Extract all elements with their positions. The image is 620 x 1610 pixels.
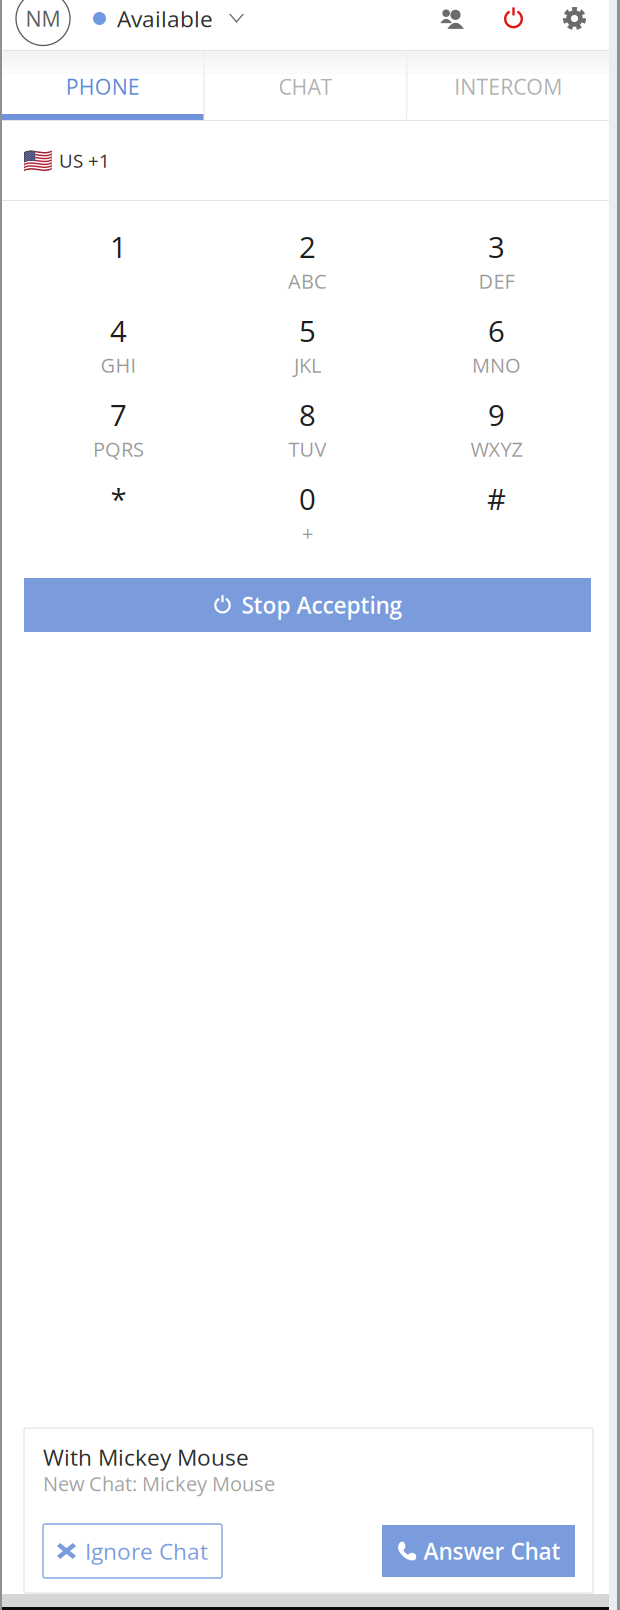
button[interactable]: 6 <box>402 315 591 399</box>
button[interactable]: Answer Chat <box>382 1525 575 1577</box>
staticText: With Mickey Mouse <box>43 1442 249 1472</box>
staticText: * <box>110 478 126 518</box>
staticText: Available <box>117 3 213 34</box>
staticText: 9 <box>488 394 505 434</box>
button[interactable]: 8 <box>213 399 402 483</box>
button[interactable]: 1 <box>24 231 213 315</box>
button[interactable]: CHAT <box>205 51 406 120</box>
staticText: PHONE <box>66 72 140 101</box>
button[interactable]: 🇺🇸 <box>2 121 609 200</box>
staticText: ABC <box>288 267 327 295</box>
button[interactable]: 9 <box>402 399 591 483</box>
button[interactable]: INTERCOM <box>407 51 609 120</box>
staticText: Answer Chat <box>423 1536 560 1566</box>
button[interactable]: 2 <box>213 231 402 315</box>
staticText: MNO <box>472 351 521 379</box>
staticText: 2 <box>299 226 316 266</box>
staticText: TUV <box>288 435 326 463</box>
staticText: US +1 <box>59 148 110 173</box>
staticText: INTERCOM <box>454 72 562 101</box>
button[interactable]: 4 <box>24 315 213 399</box>
staticText: 4 <box>110 310 127 350</box>
staticText: JKL <box>294 351 321 379</box>
button[interactable]: Go offline <box>483 0 544 37</box>
button[interactable]: 3 <box>402 231 591 315</box>
staticText: + <box>302 519 313 547</box>
button[interactable]: # <box>402 483 591 567</box>
staticText: # <box>487 478 506 518</box>
staticText: Stop Accepting <box>241 590 402 620</box>
staticText: 3 <box>488 226 505 266</box>
staticText: New Chat: Mickey Mouse <box>43 1470 275 1497</box>
button[interactable]: Stop Accepting <box>24 578 591 632</box>
button[interactable]: 5 <box>213 315 402 399</box>
staticText: WXYZ <box>470 435 522 463</box>
button[interactable]: 7 <box>24 399 213 483</box>
staticText: GHI <box>100 351 136 379</box>
staticText: 🇺🇸 <box>23 146 53 174</box>
staticText: NM <box>25 4 60 33</box>
button[interactable]: Settings <box>544 0 605 37</box>
button[interactable]: Ignore Chat <box>43 1524 222 1578</box>
staticText: 7 <box>110 394 127 434</box>
button[interactable]: PHONE <box>2 51 204 120</box>
staticText: Ignore Chat <box>85 1536 208 1566</box>
button[interactable]: Manage users <box>422 0 483 37</box>
staticText: DEF <box>478 267 514 295</box>
staticText: 8 <box>299 394 316 434</box>
staticText: 1 <box>110 226 127 266</box>
staticText: PQRS <box>93 435 144 463</box>
staticText: 5 <box>299 310 316 350</box>
staticText: 6 <box>488 310 505 350</box>
staticText: CHAT <box>278 72 332 101</box>
staticText: 0 <box>299 478 316 518</box>
button[interactable]: 0 <box>213 483 402 567</box>
button[interactable]: * <box>24 483 213 567</box>
